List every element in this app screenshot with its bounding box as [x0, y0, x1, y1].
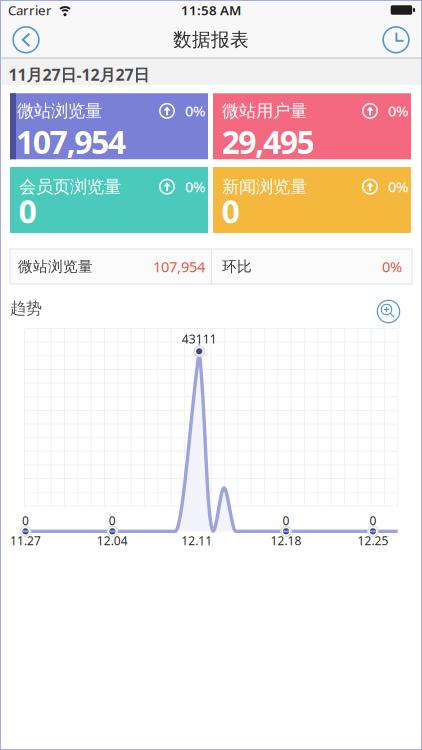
staticText: 12.25 [357, 532, 388, 548]
staticText: 12.18 [270, 532, 301, 548]
staticText: 107,954 [153, 257, 205, 276]
staticText: 0 [109, 512, 116, 528]
staticText: 0 [22, 512, 29, 528]
button[interactable]: 微站用户量 [213, 95, 411, 161]
staticText: 0% [388, 101, 408, 121]
staticText: 数据报表 [173, 28, 249, 51]
button[interactable]: 微站浏览量 [10, 95, 208, 161]
staticText: 微站用户量 [222, 100, 307, 122]
button[interactable] [376, 299, 400, 323]
staticText: 11月27日-12月27日 [8, 64, 149, 85]
staticText: 12.11 [181, 532, 212, 548]
staticText: 0% [382, 257, 402, 276]
staticText: 0 [369, 512, 376, 528]
staticText: 11:58 AM [181, 1, 241, 19]
staticText: 0% [388, 177, 408, 196]
button[interactable] [382, 26, 410, 54]
staticText: Carrier [8, 1, 52, 19]
staticText: 29,495 [221, 120, 314, 163]
staticText: 会员页浏览量 [19, 176, 121, 197]
staticText: 0% [185, 101, 205, 121]
staticText: 0 [282, 512, 289, 528]
staticText: 43111 [182, 331, 217, 347]
staticText: 微站浏览量 [17, 100, 102, 122]
button[interactable]: 会员页浏览量 [10, 167, 208, 233]
staticText: 微站浏览量 [18, 257, 93, 275]
staticText: 新闻浏览量 [222, 176, 307, 197]
staticText: 107,954 [16, 120, 126, 163]
staticText: 11.27 [10, 532, 41, 548]
staticText: 12.04 [97, 532, 128, 548]
staticText: 0% [185, 177, 205, 196]
button[interactable]: 新闻浏览量 [213, 167, 411, 233]
staticText: 0 [221, 189, 239, 232]
button[interactable] [12, 26, 40, 54]
staticText: 环比 [222, 257, 252, 275]
staticText: 趋势 [10, 299, 42, 318]
staticText: 0 [18, 189, 36, 232]
